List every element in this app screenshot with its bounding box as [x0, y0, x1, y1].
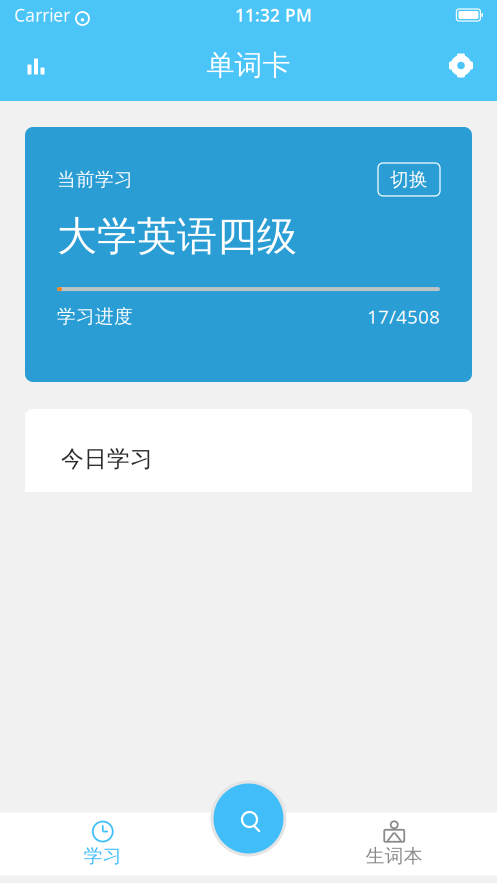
button[interactable]: 切换	[378, 163, 440, 196]
staticText: 11:32 PM	[235, 3, 312, 26]
staticText: 今日学习	[61, 445, 153, 473]
staticText: 切换	[390, 168, 428, 191]
button[interactable]: 生词本	[291, 812, 497, 875]
staticText: 大学英语四级	[57, 212, 297, 261]
staticText: 生词本	[366, 844, 423, 867]
button[interactable]: 设置	[439, 43, 483, 87]
button[interactable]: 统计	[14, 43, 58, 87]
staticText: Carrier	[14, 3, 70, 26]
staticText: 学习	[84, 844, 122, 867]
button[interactable]: 搜索	[209, 779, 287, 857]
staticText: 当前学习	[57, 168, 133, 191]
button[interactable]: 学习	[0, 812, 205, 875]
staticText: 学习进度	[57, 305, 133, 328]
staticText: 单词卡	[206, 48, 290, 83]
staticText: 17/4508	[367, 304, 440, 329]
